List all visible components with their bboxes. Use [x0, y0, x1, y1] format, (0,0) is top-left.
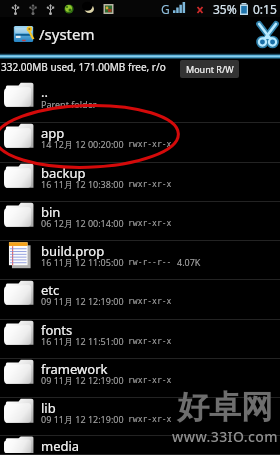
staticText: rwxr-xr-x [128, 297, 172, 306]
staticText: lib [41, 399, 56, 417]
staticText: /system [39, 24, 95, 44]
staticText: rwxr-xr-x [128, 180, 172, 189]
button[interactable]: Mount R/W [180, 60, 239, 78]
staticText: fonts [41, 321, 73, 339]
button[interactable]: etc [0, 280, 280, 320]
staticText: media [41, 437, 80, 455]
staticText: 09 11月 12 12:19:00 [41, 374, 124, 386]
staticText: rwxr-xr-x [128, 337, 172, 346]
staticText: rwxr-xr-x [128, 415, 172, 424]
staticText: bin [41, 203, 61, 221]
button[interactable]: lib [0, 398, 280, 436]
staticText: 35% [213, 1, 237, 17]
staticText: 0:15 [253, 1, 277, 17]
button[interactable]: .. [0, 82, 280, 123]
staticText: 16 11月 12 11:05:00 [41, 256, 124, 268]
button[interactable]: app [0, 123, 280, 163]
button[interactable]: Cut [248, 19, 280, 51]
staticText: 4.07K [177, 256, 201, 268]
staticText: 09 11月 12 12:19:00 [41, 413, 124, 425]
staticText: 332.00MB used, 171.00MB free, r/o [1, 60, 166, 74]
staticText: backup [41, 164, 86, 182]
staticText: build.prop [41, 242, 105, 260]
staticText: etc [41, 281, 60, 299]
staticText: 09 11月 12 12:19:00 [41, 295, 124, 307]
button[interactable]: framework [0, 359, 280, 398]
staticText: .. [41, 83, 48, 101]
staticText: rwxr-xr-x [128, 140, 172, 149]
button[interactable]: media [0, 436, 280, 455]
button[interactable]: fonts [0, 320, 280, 359]
staticText: 16 11月 12 10:38:00 [41, 178, 124, 190]
button[interactable]: bin [0, 202, 280, 241]
staticText: G [161, 1, 170, 17]
staticText: app [41, 124, 65, 142]
staticText: rw-r--r-- [128, 258, 172, 267]
staticText: 好卓网 [177, 387, 273, 427]
staticText: 14 12月 12 00:20:00 [41, 138, 124, 150]
staticText: rwxr-xr-x [128, 219, 172, 228]
staticText: www.33IO.com [172, 427, 278, 446]
button[interactable]: build.prop [0, 241, 280, 280]
staticText: Mount R/W [186, 63, 234, 75]
staticText: framework [41, 360, 108, 378]
staticText: 16 11月 12 11:51:00 [41, 335, 124, 347]
staticText: 06 12月 12 00:14:00 [41, 217, 124, 229]
button[interactable]: backup [0, 163, 280, 202]
staticText: Parent folder [41, 98, 97, 110]
staticText: rwxr-xr-x [128, 376, 172, 385]
